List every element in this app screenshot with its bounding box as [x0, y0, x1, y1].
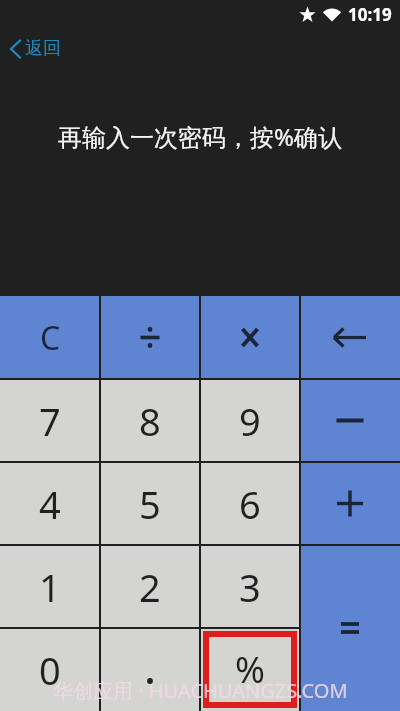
staticText: 1 — [39, 561, 61, 613]
staticText: 10:19 — [348, 3, 392, 26]
button[interactable]: 返回 — [7, 35, 63, 62]
staticText: 5 — [139, 478, 161, 530]
button[interactable] — [300, 462, 400, 545]
staticText: 9 — [239, 395, 261, 447]
button[interactable]: 0 — [0, 628, 100, 711]
staticText: % — [235, 645, 265, 694]
staticText: 8 — [139, 395, 161, 447]
staticText: 6 — [239, 478, 261, 530]
button[interactable]: C — [0, 296, 100, 379]
button[interactable]: 8 — [100, 379, 200, 462]
staticText: 3 — [239, 561, 261, 613]
button[interactable]: % — [200, 628, 300, 711]
button[interactable] — [100, 296, 200, 379]
staticText: 7 — [39, 395, 61, 447]
staticText: 再输入一次密码，按%确认 — [58, 120, 342, 153]
staticText: 返回 — [25, 37, 61, 60]
button[interactable] — [300, 545, 400, 711]
button[interactable] — [200, 296, 300, 379]
button[interactable]: 5 — [100, 462, 200, 545]
staticText: C — [40, 316, 61, 360]
button[interactable]: 2 — [100, 545, 200, 628]
staticText: 4 — [39, 478, 61, 530]
button[interactable]: 4 — [0, 462, 100, 545]
button[interactable] — [100, 628, 200, 711]
staticText: 2 — [139, 561, 161, 613]
button[interactable]: 9 — [200, 379, 300, 462]
button[interactable]: 3 — [200, 545, 300, 628]
staticText: 华创应用 · HUACHUANGZS.COM — [53, 677, 348, 704]
button[interactable]: 7 — [0, 379, 100, 462]
staticText: 0 — [39, 644, 61, 696]
button[interactable]: 6 — [200, 462, 300, 545]
button[interactable]: 1 — [0, 545, 100, 628]
button[interactable] — [300, 296, 400, 379]
button[interactable] — [300, 379, 400, 462]
